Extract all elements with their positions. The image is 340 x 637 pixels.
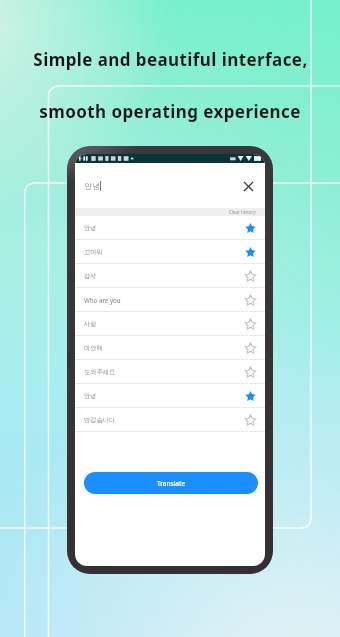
button[interactable]: 미안해 xyxy=(75,336,265,360)
button[interactable]: Clear text xyxy=(240,178,256,194)
staticText: Translate xyxy=(157,479,186,488)
staticText: smooth operating experience xyxy=(39,100,301,123)
staticText: 감사 xyxy=(84,272,97,280)
button[interactable]: Who are you xyxy=(75,288,265,312)
button[interactable]: 안녕 xyxy=(75,216,265,240)
staticText: 안녕 xyxy=(84,181,100,191)
staticText: 안녕 xyxy=(84,224,97,232)
staticText: 고마워 xyxy=(84,248,103,256)
staticText: Clear history xyxy=(229,209,256,215)
button[interactable]: 고마워 xyxy=(75,240,265,264)
staticText: Who are you xyxy=(84,296,121,304)
staticText: 도와주세요 xyxy=(84,368,115,376)
staticText: 안녕 xyxy=(84,392,97,400)
staticText: Simple and beautiful interface, xyxy=(33,48,308,71)
button[interactable]: 도와주세요 xyxy=(75,360,265,384)
staticText: 미안해 xyxy=(84,344,103,352)
staticText: 사랑 xyxy=(84,320,97,328)
button[interactable]: 감사 xyxy=(75,264,265,288)
button[interactable]: 안녕 xyxy=(75,384,265,408)
button[interactable]: Clear history xyxy=(75,208,265,216)
staticText: 반갑습니다 xyxy=(84,416,115,424)
button[interactable]: 반갑습니다 xyxy=(75,408,265,432)
button[interactable]: Translate xyxy=(84,472,258,494)
button[interactable]: 사랑 xyxy=(75,312,265,336)
